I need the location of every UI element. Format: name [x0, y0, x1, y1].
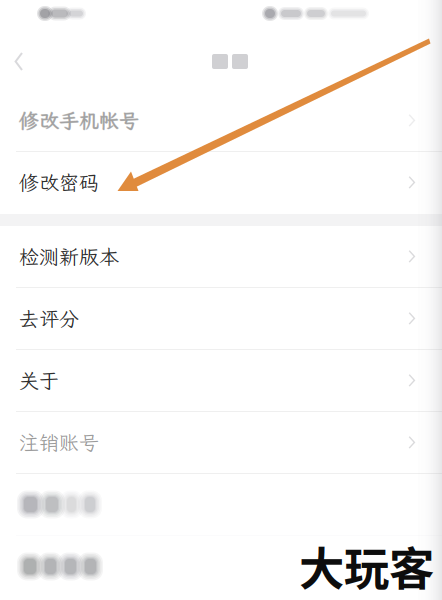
button[interactable]: 修改手机帐号 — [0, 90, 442, 152]
staticText: 关于 — [19, 367, 59, 394]
staticText: 修改手机帐号 — [19, 107, 139, 133]
staticText: 修改手机帐号 — [19, 107, 139, 133]
staticText: 修改手机帐号 — [20, 107, 140, 134]
staticText: 修改密码 — [19, 169, 99, 196]
staticText: 修改手机帐号 — [18, 107, 138, 134]
button[interactable]: 修改密码 — [0, 152, 442, 214]
button[interactable]: 注销账号 — [0, 412, 442, 474]
button[interactable]: 去评分 — [0, 288, 442, 350]
staticText: 注销账号 — [19, 429, 99, 456]
staticText: 修改手机帐号 — [19, 108, 139, 134]
staticText: 修改手机帐号 — [19, 107, 139, 133]
staticText: 修改手机帐号 — [19, 108, 139, 134]
staticText: 修改手机帐号 — [19, 107, 139, 134]
button[interactable]: Back — [0, 36, 50, 86]
button[interactable] — [0, 474, 442, 536]
staticText: 大玩客 — [299, 533, 434, 599]
staticText: 修改手机帐号 — [19, 108, 139, 134]
staticText: 修改手机帐号 — [19, 107, 139, 133]
button[interactable]: 检测新版本 — [0, 226, 442, 288]
button[interactable] — [0, 536, 442, 598]
button[interactable]: 关于 — [0, 350, 442, 412]
staticText: 去评分 — [19, 305, 79, 332]
staticText: 修改手机帐号 — [19, 108, 139, 134]
staticText: 检测新版本 — [19, 243, 119, 270]
staticText: 修改手机帐号 — [19, 107, 139, 134]
staticText: 修改手机帐号 — [19, 107, 139, 134]
